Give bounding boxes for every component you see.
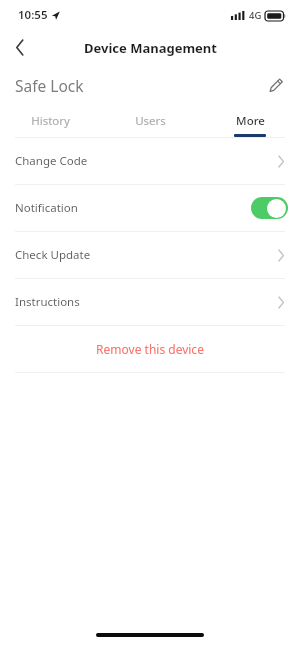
- button[interactable]: Notification toggle, on: [251, 197, 288, 219]
- button[interactable]: Remove this device: [0, 326, 300, 372]
- staticText: Check Update: [15, 247, 91, 263]
- staticText: Remove this device: [96, 341, 204, 357]
- button[interactable]: Back: [0, 30, 40, 65]
- staticText: Safe Lock: [15, 75, 84, 96]
- staticText: Users: [135, 113, 166, 129]
- button[interactable]: Check Update: [0, 232, 300, 278]
- button[interactable]: Edit device name: [260, 69, 292, 101]
- staticText: 4G: [249, 9, 262, 22]
- staticText: 10:55: [18, 7, 48, 23]
- staticText: History: [31, 113, 70, 129]
- button[interactable]: More: [200, 105, 300, 137]
- staticText: Device Management: [84, 39, 217, 57]
- staticText: More: [236, 113, 265, 129]
- button[interactable]: Users: [100, 105, 200, 137]
- button[interactable]: Instructions: [0, 279, 300, 325]
- staticText: Change Code: [15, 153, 88, 169]
- staticText: Instructions: [15, 294, 80, 310]
- button[interactable]: History: [0, 105, 100, 137]
- staticText: Notification: [15, 200, 78, 216]
- button[interactable]: Notification: [0, 185, 300, 231]
- button[interactable]: Change Code: [0, 138, 300, 184]
